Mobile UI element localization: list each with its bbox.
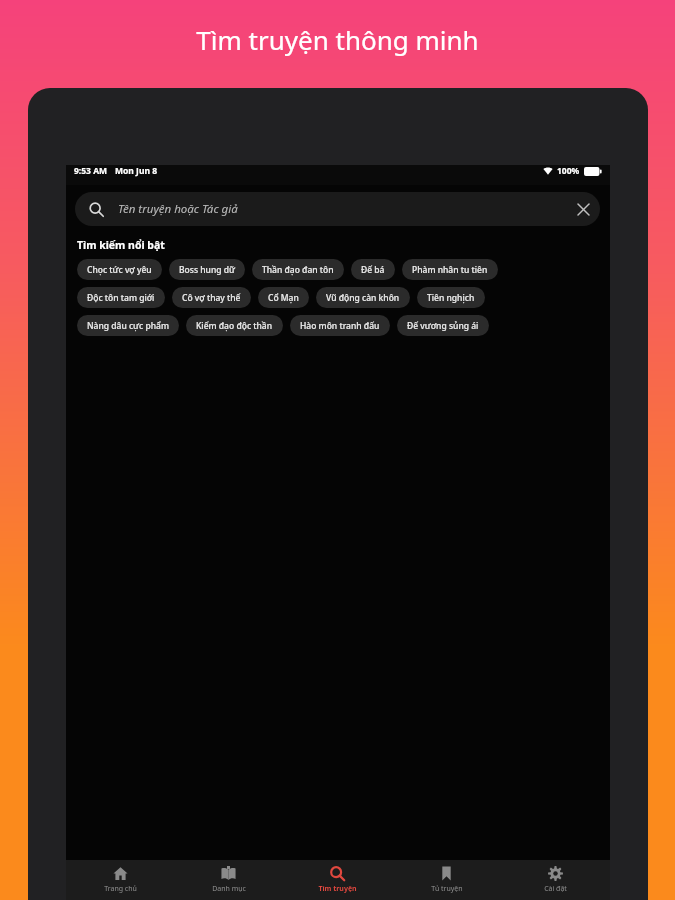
- staticText: Danh mục: [212, 884, 246, 894]
- button[interactable]: Trang chủ: [66, 860, 174, 900]
- staticText: Tiên nghịch: [427, 292, 475, 304]
- button[interactable]: Cô vợ thay thế: [172, 287, 251, 308]
- button[interactable]: Clear search: [570, 196, 596, 222]
- button[interactable]: Phàm nhân tu tiên: [402, 259, 498, 280]
- staticText: Boss hung dữ: [179, 264, 235, 276]
- staticText: Tủ truyện: [431, 884, 463, 894]
- staticText: Trang chủ: [104, 884, 137, 894]
- staticText: Đế bá: [361, 264, 385, 276]
- staticText: Độc tôn tam giới: [87, 292, 155, 304]
- staticText: 9:53 AM: [74, 165, 108, 177]
- staticText: Chọc tức vợ yêu: [87, 264, 152, 276]
- button[interactable]: Thần đạo đan tôn: [252, 259, 344, 280]
- button[interactable]: Cài đặt: [501, 860, 610, 900]
- button[interactable]: Danh mục: [174, 860, 283, 900]
- staticText: Đế vương sủng ái: [407, 320, 479, 332]
- button[interactable]: Cổ Mạn: [258, 287, 309, 308]
- button[interactable]: Kiếm đạo độc thần: [186, 315, 283, 336]
- button[interactable]: Độc tôn tam giới: [77, 287, 165, 308]
- button[interactable]: Nàng dâu cực phẩm: [77, 315, 179, 336]
- button[interactable]: Đế vương sủng ái: [397, 315, 489, 336]
- staticText: Tìm truyện thông minh: [196, 22, 479, 57]
- staticText: Mon Jun 8: [115, 165, 157, 177]
- staticText: Cô vợ thay thế: [182, 292, 241, 304]
- button[interactable]: Tiên nghịch: [417, 287, 485, 308]
- staticText: Tên truyện hoặc Tác giả: [118, 201, 238, 217]
- staticText: Kiếm đạo độc thần: [196, 320, 273, 332]
- staticText: Cổ Mạn: [268, 292, 299, 304]
- staticText: Nàng dâu cực phẩm: [87, 320, 169, 332]
- button[interactable]: Đế bá: [351, 259, 395, 280]
- staticText: Tìm truyện: [318, 884, 357, 894]
- button[interactable]: Tìm truyện: [283, 860, 392, 900]
- button[interactable]: Vũ động càn khôn: [316, 287, 410, 308]
- button[interactable]: Tủ truyện: [392, 860, 501, 900]
- staticText: Cài đặt: [544, 884, 567, 894]
- staticText: Phàm nhân tu tiên: [412, 264, 488, 276]
- button[interactable]: Chọc tức vợ yêu: [77, 259, 162, 280]
- staticText: Tìm kiếm nổi bật: [77, 238, 165, 252]
- staticText: Vũ động càn khôn: [326, 292, 400, 304]
- button[interactable]: Boss hung dữ: [169, 259, 245, 280]
- staticText: 100%: [557, 165, 580, 177]
- staticText: Hào môn tranh đấu: [300, 320, 380, 332]
- button[interactable]: Tên truyện hoặc Tác giả: [75, 192, 600, 226]
- button[interactable]: Hào môn tranh đấu: [290, 315, 390, 336]
- staticText: Thần đạo đan tôn: [262, 264, 334, 276]
